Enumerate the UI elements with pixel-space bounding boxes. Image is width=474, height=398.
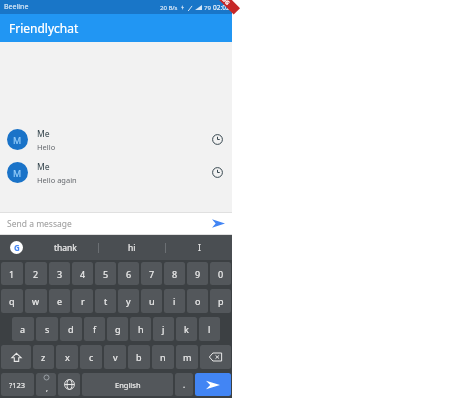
button[interactable]: s	[36, 317, 58, 341]
staticText: s	[45, 323, 50, 335]
button[interactable]: hi	[99, 235, 165, 260]
staticText: ?123	[9, 380, 26, 390]
button[interactable]: l	[199, 317, 220, 341]
button[interactable]: g	[107, 317, 128, 341]
button[interactable]: r	[72, 289, 93, 313]
button[interactable]: k	[176, 317, 197, 341]
button[interactable]: Send	[212, 217, 225, 230]
staticText: t	[104, 295, 108, 307]
staticText: u	[149, 295, 155, 307]
staticText: m	[183, 351, 192, 363]
button[interactable]: q	[1, 289, 23, 313]
button[interactable]: Friendlychat	[0, 14, 232, 42]
staticText: M	[13, 134, 22, 146]
button[interactable]: p	[210, 289, 231, 313]
button[interactable]: d	[60, 317, 82, 341]
staticText: x	[65, 351, 70, 363]
staticText: 3	[57, 268, 63, 280]
button[interactable]: I	[166, 235, 232, 260]
staticText: 79	[204, 4, 211, 12]
button[interactable]: 2	[25, 262, 47, 285]
staticText: r	[81, 295, 85, 307]
button[interactable]: 5	[95, 262, 116, 285]
staticText: d	[68, 323, 74, 335]
staticText: p	[218, 295, 224, 307]
staticText: g	[115, 323, 121, 335]
staticText: Friendlychat	[9, 20, 79, 36]
button[interactable]: n	[152, 345, 174, 369]
other: Pending	[212, 167, 223, 178]
staticText: 02:02	[213, 3, 230, 12]
button[interactable]: ?123	[1, 373, 34, 396]
staticText: thank	[54, 242, 77, 254]
button[interactable]: Send a message	[0, 213, 232, 234]
button[interactable]: y	[118, 289, 139, 313]
button[interactable]: w	[25, 289, 47, 313]
button[interactable]: i	[164, 289, 185, 313]
staticText: f	[93, 323, 97, 335]
button[interactable]: x	[56, 345, 78, 369]
staticText: a	[20, 323, 26, 335]
button[interactable]: u	[141, 289, 162, 313]
button[interactable]: 3	[49, 262, 70, 285]
button[interactable]: a	[12, 317, 34, 341]
staticText: y	[126, 295, 131, 307]
button[interactable]: m	[176, 345, 198, 369]
staticText: 9	[195, 268, 201, 280]
button[interactable]: 1	[1, 262, 23, 285]
staticText: h	[138, 323, 144, 335]
staticText: 7	[149, 268, 155, 280]
staticText: 0	[218, 268, 224, 280]
staticText: Me	[37, 161, 50, 173]
button[interactable]: 8	[164, 262, 185, 285]
staticText: q	[9, 295, 15, 307]
button[interactable]: h	[130, 317, 151, 341]
button[interactable]: c	[80, 345, 102, 369]
button[interactable]: English	[82, 373, 173, 396]
button[interactable]: v	[104, 345, 126, 369]
button[interactable]: M	[1, 123, 231, 156]
staticText: i	[173, 295, 176, 307]
button[interactable]: 7	[141, 262, 162, 285]
button[interactable]: 9	[187, 262, 208, 285]
button[interactable]: Backspace	[200, 345, 231, 369]
button[interactable]: Comma	[36, 373, 56, 396]
button[interactable]: 4	[72, 262, 93, 285]
staticText: o	[195, 295, 201, 307]
button[interactable]: o	[187, 289, 208, 313]
staticText: 1	[9, 268, 15, 280]
button[interactable]: M	[1, 156, 231, 189]
button[interactable]: 6	[118, 262, 139, 285]
staticText: z	[41, 351, 46, 363]
button[interactable]: Shift	[1, 345, 31, 369]
staticText: Beeline	[4, 2, 29, 12]
button[interactable]: e	[49, 289, 70, 313]
button[interactable]: Period	[175, 373, 193, 396]
button[interactable]: Send	[195, 373, 231, 396]
staticText: e	[57, 295, 63, 307]
staticText: Me	[37, 128, 50, 140]
staticText: English	[115, 380, 141, 390]
staticText: ,	[46, 384, 48, 394]
button[interactable]: Google	[0, 235, 32, 260]
button[interactable]: 0	[210, 262, 231, 285]
button[interactable]: z	[33, 345, 54, 369]
button[interactable]: thank	[32, 235, 98, 260]
staticText: 20 B/s	[160, 4, 178, 12]
button[interactable]: f	[84, 317, 105, 341]
staticText: n	[160, 351, 166, 363]
staticText: 8	[172, 268, 178, 280]
button[interactable]: j	[153, 317, 174, 341]
staticText: 2	[33, 268, 39, 280]
staticText: 5	[103, 268, 109, 280]
button[interactable]: t	[95, 289, 116, 313]
staticText: G	[14, 242, 20, 253]
staticText: c	[89, 351, 94, 363]
staticText: Hello	[37, 142, 56, 152]
button[interactable]: b	[128, 345, 150, 369]
staticText: v	[113, 351, 118, 363]
button[interactable]: Change language	[58, 373, 80, 396]
staticText: M	[13, 167, 22, 179]
staticText: Send a message	[7, 218, 212, 230]
staticText: b	[136, 351, 142, 363]
